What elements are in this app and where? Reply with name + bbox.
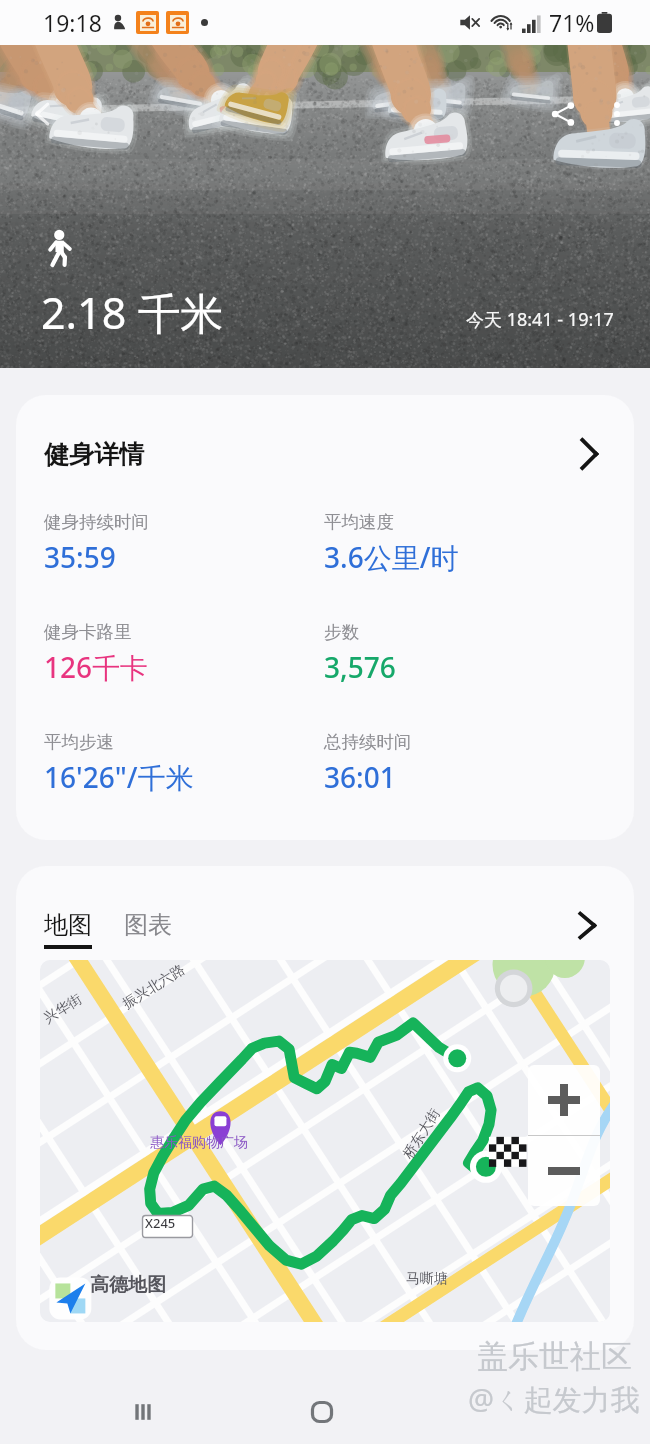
staticText: X245 bbox=[145, 1214, 176, 1232]
button[interactable]: Back bbox=[16, 87, 70, 141]
staticText: 今天 18:41 - 19:17 bbox=[466, 307, 614, 332]
button[interactable]: Zoom in bbox=[528, 1065, 600, 1135]
staticText: 健身详情 bbox=[44, 439, 144, 470]
staticText: 平均步速 bbox=[44, 731, 114, 753]
staticText: 71% bbox=[549, 7, 595, 38]
staticText: 步数 bbox=[324, 621, 359, 643]
staticText: 3.6公里/时 bbox=[324, 538, 459, 576]
button[interactable]: 健身详情 bbox=[16, 395, 634, 480]
staticText: 16'26"/千米 bbox=[44, 758, 194, 796]
staticText: 振兴北六路 bbox=[119, 961, 188, 1013]
staticText: 健身持续时间 bbox=[44, 511, 149, 533]
staticText: 盖乐世社区 bbox=[477, 1337, 632, 1376]
staticText: @ㄑ起发力我 bbox=[468, 1379, 640, 1419]
staticText: 35:59 bbox=[44, 538, 116, 576]
staticText: 平均速度 bbox=[324, 511, 394, 533]
button[interactable]: Open map bbox=[570, 912, 606, 948]
staticText: 2.18 千米 bbox=[41, 283, 224, 342]
button[interactable]: Zoom out bbox=[528, 1136, 600, 1206]
button[interactable]: More options bbox=[590, 87, 644, 141]
button[interactable]: Home bbox=[294, 1384, 350, 1440]
staticText: 惠乐福购物广场 bbox=[150, 1134, 248, 1152]
button[interactable]: Back bbox=[470, 1384, 526, 1440]
staticText: 马嘶塘 bbox=[406, 1270, 448, 1288]
staticText: 总持续时间 bbox=[324, 731, 412, 753]
button[interactable]: Share bbox=[536, 87, 590, 141]
button[interactable]: 地图 bbox=[44, 910, 92, 949]
staticText: 健身卡路里 bbox=[44, 621, 132, 643]
staticText: 图表 bbox=[124, 910, 172, 940]
staticText: 19:18 bbox=[43, 7, 102, 38]
staticText: 桥东大街 bbox=[399, 1105, 444, 1162]
staticText: 地图 bbox=[44, 910, 92, 940]
staticText: 高德地图 bbox=[90, 1273, 166, 1297]
staticText: 36:01 bbox=[324, 758, 396, 796]
staticText: 3,576 bbox=[324, 648, 396, 686]
staticText: 兴华街 bbox=[40, 990, 86, 1028]
button[interactable]: Recent apps bbox=[115, 1384, 171, 1440]
staticText: 126千卡 bbox=[44, 648, 149, 686]
button[interactable]: 兴华街 bbox=[40, 960, 610, 1322]
button[interactable]: 图表 bbox=[124, 910, 172, 949]
